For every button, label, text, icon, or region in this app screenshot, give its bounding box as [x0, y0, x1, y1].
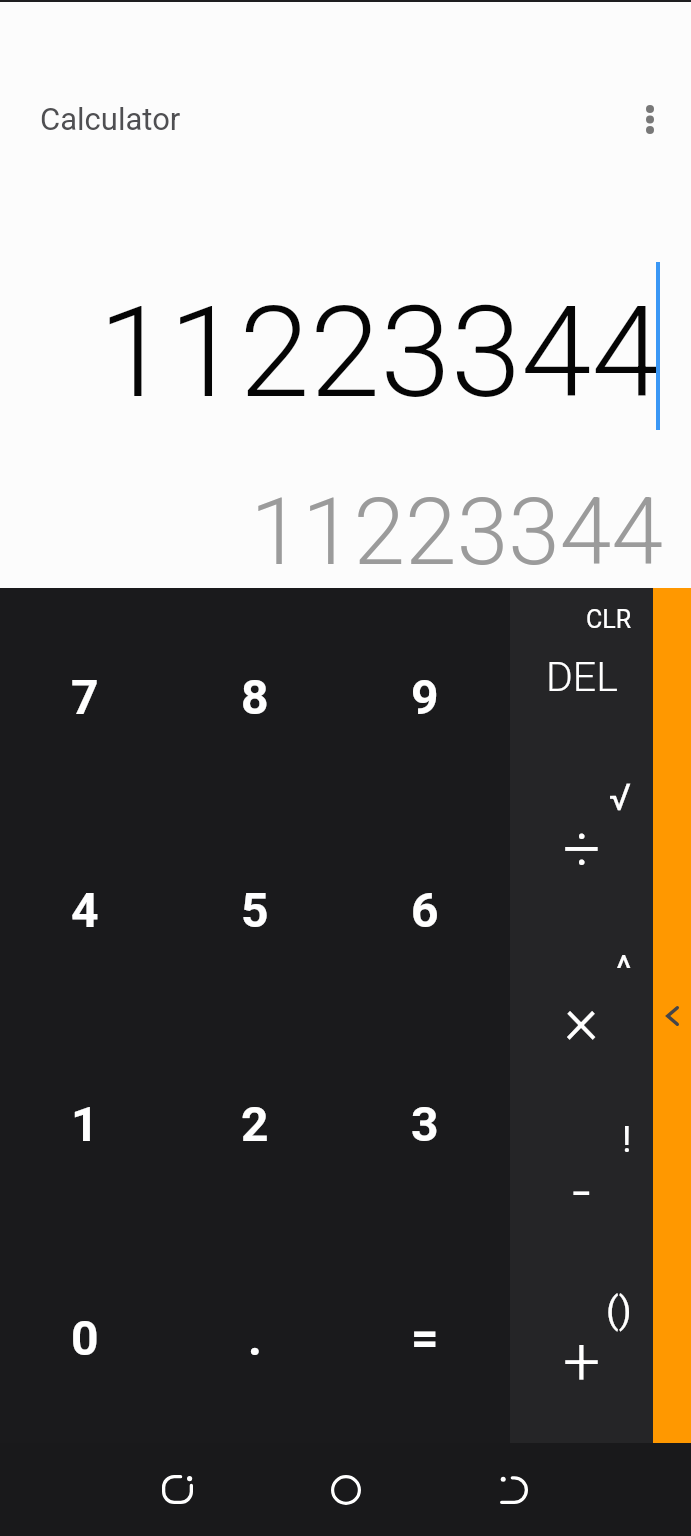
- button[interactable]: 2: [170, 1015, 340, 1229]
- button[interactable]: ÷: [510, 759, 653, 930]
- staticText: 0: [71, 1310, 99, 1366]
- staticText: √: [609, 776, 632, 819]
- button[interactable]: 3: [340, 1015, 510, 1229]
- button[interactable]: 0: [0, 1229, 170, 1443]
- staticText: 8: [241, 669, 269, 725]
- staticText: 5: [241, 882, 269, 938]
- staticText: 3: [411, 1096, 439, 1152]
- staticText: 6: [411, 882, 439, 938]
- staticText: 4: [71, 882, 99, 938]
- button[interactable]: More options: [621, 91, 678, 148]
- staticText: =: [411, 1310, 439, 1366]
- staticText: +: [563, 1324, 601, 1401]
- staticText: ÷: [563, 811, 601, 888]
- button[interactable]: Calculator: [26, 89, 195, 149]
- button[interactable]: Back: [468, 1443, 560, 1536]
- staticText: 9: [411, 669, 439, 725]
- button[interactable]: =: [340, 1229, 510, 1443]
- button[interactable]: ×: [510, 930, 653, 1101]
- staticText: ^: [616, 947, 632, 990]
- staticText: (): [606, 1289, 632, 1332]
- staticText: ×: [564, 982, 599, 1059]
- button[interactable]: 8: [170, 588, 340, 801]
- button[interactable]: 9: [340, 588, 510, 801]
- staticText: 2: [241, 1096, 269, 1152]
- button[interactable]: 6: [340, 801, 510, 1015]
- button[interactable]: Expand keypad: [653, 588, 691, 1443]
- button[interactable]: 1: [0, 1015, 170, 1229]
- staticText: 11223344: [0, 478, 663, 587]
- button[interactable]: Recents: [131, 1443, 223, 1536]
- button[interactable]: 4: [0, 801, 170, 1015]
- staticText: .: [248, 1310, 262, 1366]
- staticText: 1: [71, 1096, 99, 1152]
- staticText: DEL: [546, 653, 618, 701]
- button[interactable]: DEL: [510, 588, 653, 759]
- staticText: CLR: [586, 605, 632, 634]
- button[interactable]: Home: [300, 1443, 392, 1536]
- button[interactable]: 5: [170, 801, 340, 1015]
- button[interactable]: .: [170, 1229, 340, 1443]
- staticText: -: [572, 1153, 591, 1230]
- staticText: !: [622, 1118, 632, 1161]
- staticText: 11223344: [0, 278, 662, 427]
- button[interactable]: +: [510, 1272, 653, 1443]
- staticText: Calculator: [40, 101, 181, 137]
- button[interactable]: 7: [0, 588, 170, 801]
- staticText: 7: [71, 669, 99, 725]
- button[interactable]: -: [510, 1101, 653, 1272]
